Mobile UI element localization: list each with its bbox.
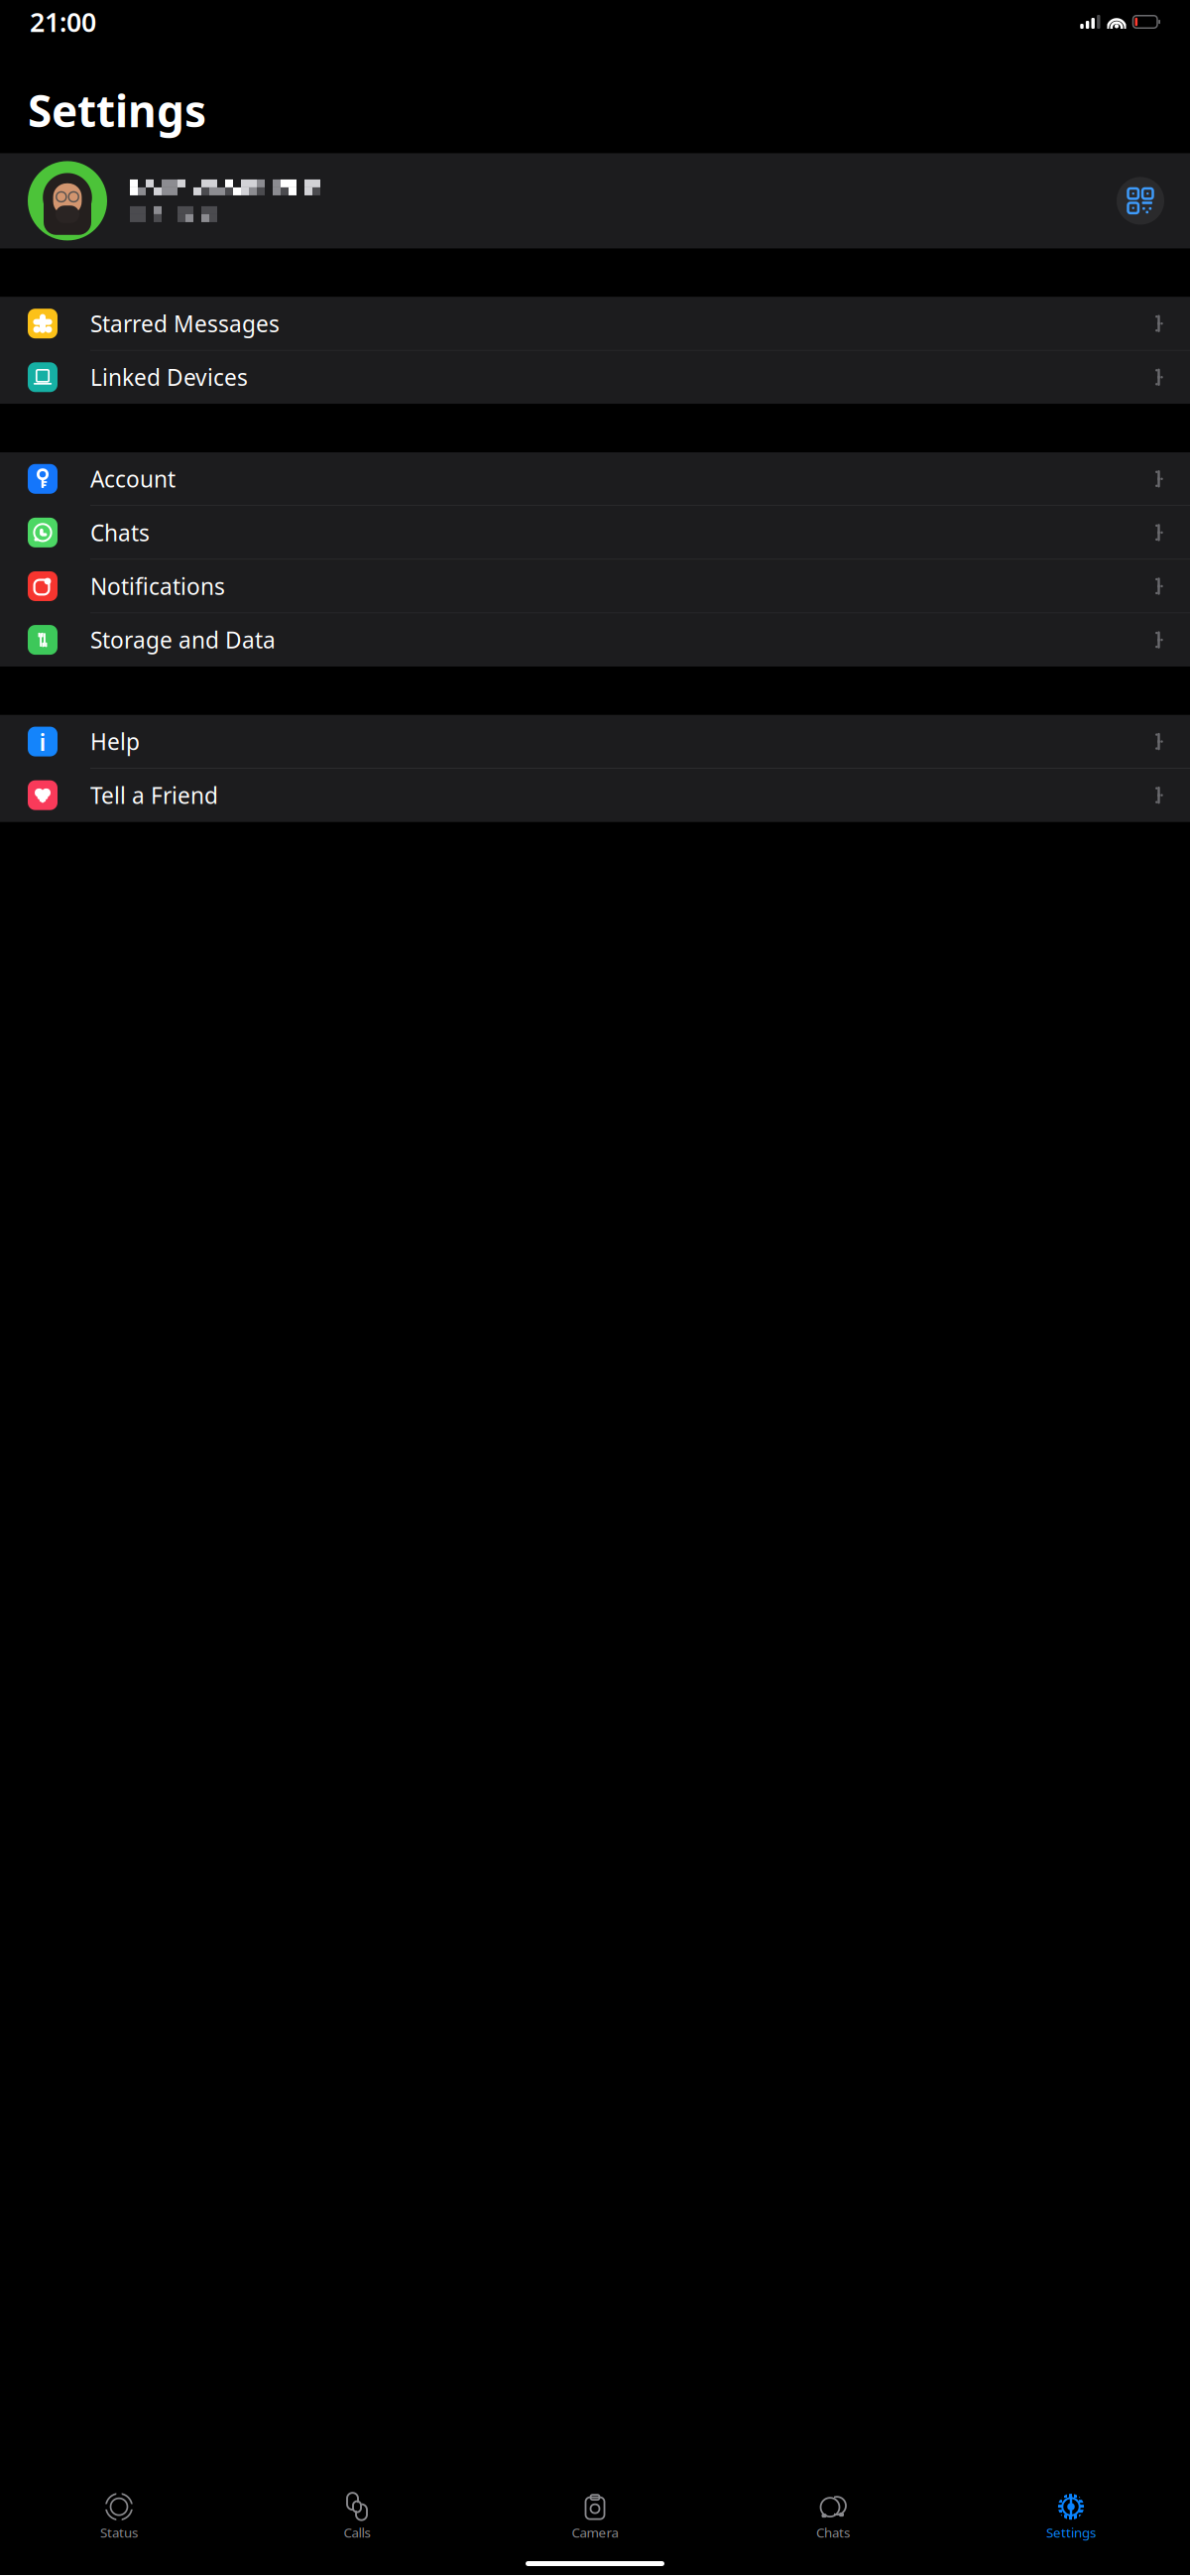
button[interactable]: Calls [238,2493,476,2541]
staticText: Storage and Data [90,625,276,655]
button[interactable]: Account [0,452,1190,506]
staticText: Account [90,464,176,494]
staticText: Starred Messages [90,309,280,338]
staticText: Settings [1046,2524,1096,2541]
button[interactable] [0,153,1190,248]
staticText: Calls [344,2524,370,2541]
button[interactable]: Chats [714,2493,952,2541]
button[interactable]: Starred Messages [0,297,1190,351]
staticText: Chats [816,2524,850,2541]
staticText: Notifications [90,571,225,601]
button[interactable]: Tell a Friend [0,769,1190,822]
button[interactable]: Notifications [0,560,1190,613]
button[interactable]: Status [0,2493,238,2541]
button[interactable]: i [0,715,1190,769]
staticText: Status [100,2524,138,2541]
button[interactable]: Camera [476,2493,714,2541]
button[interactable]: Storage and Data [0,613,1190,666]
button[interactable]: Settings [952,2493,1190,2541]
staticText: Settings [28,81,206,139]
staticText: i [39,726,46,757]
staticText: Chats [90,518,150,547]
staticText: Camera [572,2524,618,2541]
staticText: 21:00 [30,4,96,39]
staticText: Tell a Friend [90,780,218,810]
button[interactable]: Chats [0,506,1190,560]
staticText: Help [90,727,140,756]
button[interactable]: Linked Devices [0,351,1190,404]
staticText: Linked Devices [90,362,248,392]
